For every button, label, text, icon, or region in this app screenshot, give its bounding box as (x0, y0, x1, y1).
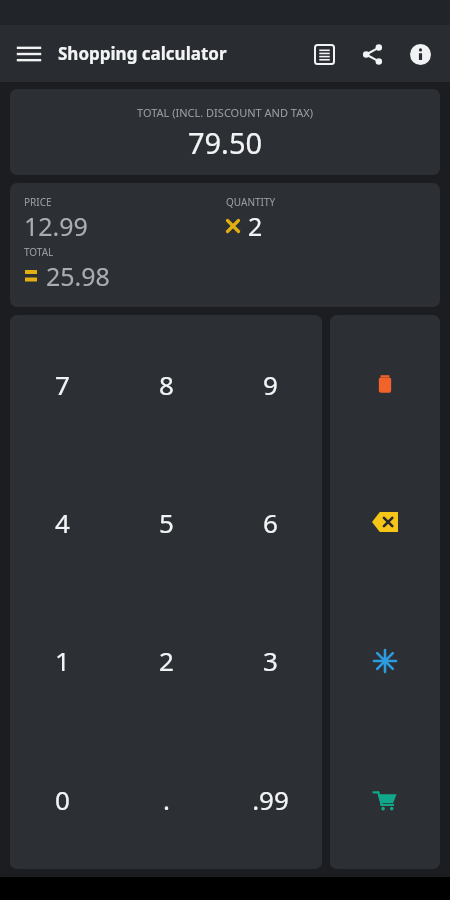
staticText: 8 (159, 367, 174, 402)
button[interactable]: Menu (0, 25, 58, 82)
button[interactable]: 1 (10, 591, 114, 730)
button[interactable]: Add to cart (330, 730, 440, 869)
staticText: 0 (55, 782, 70, 817)
staticText: 5 (159, 505, 174, 540)
button[interactable]: 2 (114, 591, 218, 730)
staticText: 12.99 (24, 209, 88, 243)
button[interactable]: TOTAL (INCL. DISCOUNT AND TAX) (10, 89, 440, 175)
staticText: 1 (55, 643, 70, 678)
button[interactable]: 5 (114, 453, 218, 591)
button[interactable]: Receipt (300, 30, 348, 78)
staticText: TOTAL (INCL. DISCOUNT AND TAX) (10, 105, 440, 120)
button[interactable]: 6 (218, 453, 322, 591)
staticText: 25.98 (46, 259, 110, 293)
button[interactable]: 0 (10, 730, 114, 869)
staticText: 7 (55, 367, 70, 402)
staticText: 4 (55, 505, 70, 540)
button[interactable]: Discount (330, 591, 440, 730)
staticText: PRICE (24, 195, 52, 209)
staticText: .99 (252, 782, 289, 817)
staticText: 6 (263, 505, 278, 540)
staticText: TOTAL (24, 245, 54, 259)
staticText: 2 (248, 209, 263, 243)
button[interactable]: 8 (114, 315, 218, 453)
button[interactable]: Clear (330, 315, 440, 453)
button[interactable]: . (114, 730, 218, 869)
staticText: 9 (263, 367, 278, 402)
staticText: 2 (159, 643, 174, 678)
button[interactable]: 7 (10, 315, 114, 453)
staticText: 79.50 (10, 123, 440, 162)
button[interactable]: Backspace (330, 453, 440, 591)
button[interactable]: Info (396, 30, 444, 78)
staticText: . (163, 782, 170, 817)
button[interactable]: 9 (218, 315, 322, 453)
button[interactable]: .99 (218, 730, 322, 869)
staticText: 3 (263, 643, 278, 678)
button[interactable]: Share (348, 30, 396, 78)
staticText: QUANTITY (226, 195, 276, 209)
button[interactable]: 3 (218, 591, 322, 730)
button[interactable]: PRICE (10, 183, 440, 307)
button[interactable]: 4 (10, 453, 114, 591)
staticText: Shopping calculator (58, 42, 300, 65)
